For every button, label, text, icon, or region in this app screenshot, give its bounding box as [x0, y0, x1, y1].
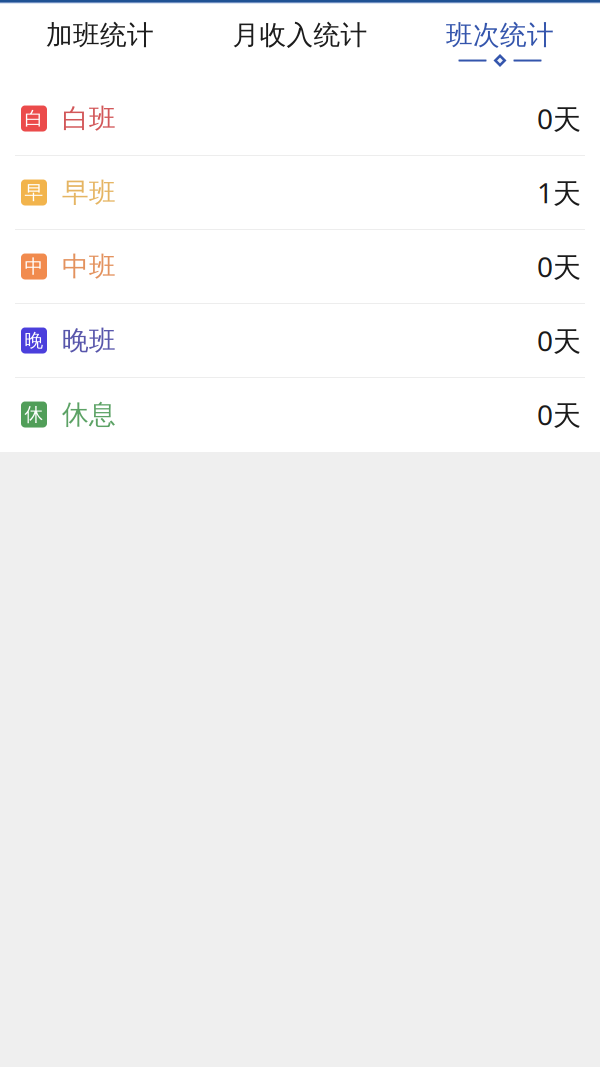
- button[interactable]: 班次统计: [400, 4, 600, 82]
- staticText: 1天: [537, 174, 581, 211]
- staticText: 晚: [24, 329, 43, 352]
- button[interactable]: 休: [0, 378, 600, 452]
- staticText: 0天: [537, 100, 581, 137]
- staticText: 早: [24, 181, 43, 204]
- button[interactable]: 白: [0, 82, 600, 156]
- button[interactable]: 月收入统计: [200, 4, 400, 82]
- staticText: 月收入统计: [232, 19, 367, 51]
- staticText: 班次统计: [446, 19, 554, 51]
- staticText: 白班: [62, 102, 116, 135]
- staticText: 0天: [537, 322, 581, 359]
- staticText: 中班: [62, 250, 116, 283]
- staticText: 白: [24, 107, 43, 130]
- staticText: 休: [24, 403, 43, 426]
- button[interactable]: 中: [0, 230, 600, 304]
- staticText: 加班统计: [46, 19, 154, 51]
- staticText: 早班: [62, 176, 116, 209]
- button[interactable]: 加班统计: [0, 4, 200, 82]
- staticText: 0天: [537, 396, 581, 433]
- staticText: 中: [24, 255, 43, 278]
- staticText: 休息: [62, 398, 116, 431]
- button[interactable]: 早: [0, 156, 600, 230]
- staticText: 0天: [537, 248, 581, 285]
- staticText: 晚班: [62, 324, 116, 357]
- button[interactable]: 晚: [0, 304, 600, 378]
